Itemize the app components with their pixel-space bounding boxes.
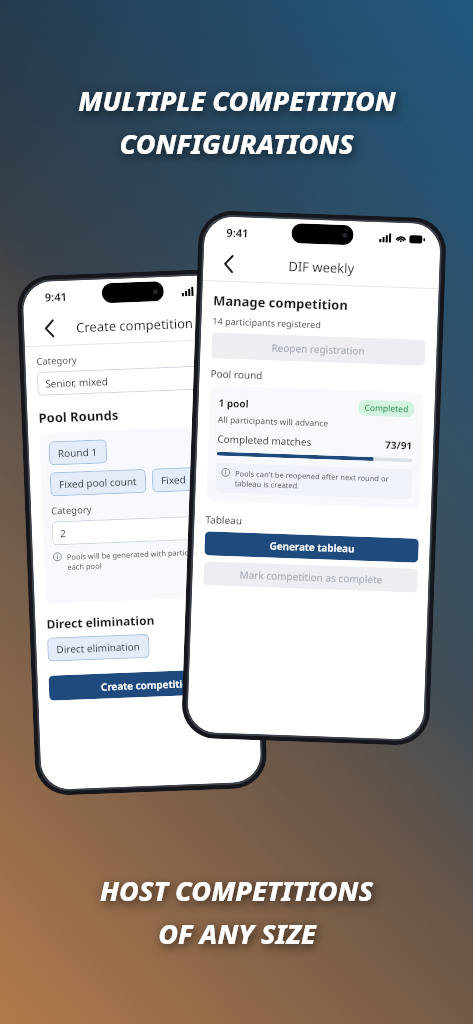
staticText: 9:41	[226, 225, 249, 241]
staticText: Tableau	[205, 512, 243, 527]
staticText: Category	[36, 353, 78, 368]
button[interactable]: Senior, mixed	[37, 364, 236, 396]
button[interactable]: Mark competition as complete	[203, 561, 418, 593]
staticText: Manage competition	[213, 291, 348, 314]
staticText: Mark competition as complete	[239, 567, 383, 586]
staticText: Pools can't be reopened after next round…	[235, 468, 407, 494]
staticText: Category	[51, 503, 92, 517]
staticText: Fixed	[161, 472, 186, 487]
button[interactable]: 2	[51, 515, 232, 545]
staticText: 9:41	[45, 289, 67, 304]
staticText: Create competition	[101, 676, 195, 694]
staticText: Fixed pool count	[59, 474, 137, 491]
staticText: Pool round	[210, 366, 263, 382]
staticText: Direct elimination	[46, 612, 155, 632]
staticText: Pool Rounds	[38, 406, 119, 427]
button[interactable]: Back	[36, 315, 63, 342]
staticText: Direct elimination	[56, 639, 141, 656]
staticText: 73/91	[385, 437, 413, 452]
staticText: OF ANY SIZE	[158, 915, 316, 952]
staticText: Pools will be generated with participant…	[67, 545, 233, 572]
staticText: 2	[60, 526, 66, 540]
staticText: Completed	[364, 402, 409, 415]
staticText: MULTIPLE COMPETITION	[78, 82, 396, 119]
button[interactable]: Round 1	[48, 439, 107, 465]
button[interactable]: Create competition	[48, 668, 247, 701]
staticText: Generate tableau	[269, 538, 355, 555]
staticText: CONFIGURATIONS	[119, 125, 354, 162]
staticText: Round 1	[58, 445, 98, 460]
staticText: Reopen registration	[271, 340, 366, 358]
staticText: 1 pool	[218, 396, 250, 411]
staticText: HOST COMPETITIONS	[100, 872, 373, 909]
button[interactable]: Fixed	[152, 467, 195, 492]
button[interactable]: Reopen registration	[211, 332, 426, 366]
button[interactable]: Back	[215, 250, 242, 277]
button[interactable]: Fixed pool count	[50, 469, 146, 496]
button[interactable]: 1 pool	[206, 385, 424, 509]
button[interactable]: Generate tableau	[204, 531, 419, 563]
staticText: Completed matches	[217, 432, 312, 449]
button[interactable]: Direct elimination	[47, 634, 150, 662]
staticText: All participants will advance	[218, 414, 329, 429]
staticText: Senior, mixed	[45, 374, 108, 391]
staticText: 14 participants registered	[212, 314, 322, 330]
staticText: Create competition	[76, 314, 193, 336]
staticText: DIF weekly	[288, 257, 355, 277]
